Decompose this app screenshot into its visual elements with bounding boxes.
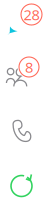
staticText: 28: [23, 5, 39, 24]
button[interactable]: Messages, 28 unread: [0, 0, 46, 53]
button[interactable]: Call: [0, 106, 46, 159]
button[interactable]: Contacts, 8 new: [0, 53, 46, 106]
staticText: 8: [25, 57, 33, 77]
button[interactable]: Refresh: [0, 159, 46, 213]
